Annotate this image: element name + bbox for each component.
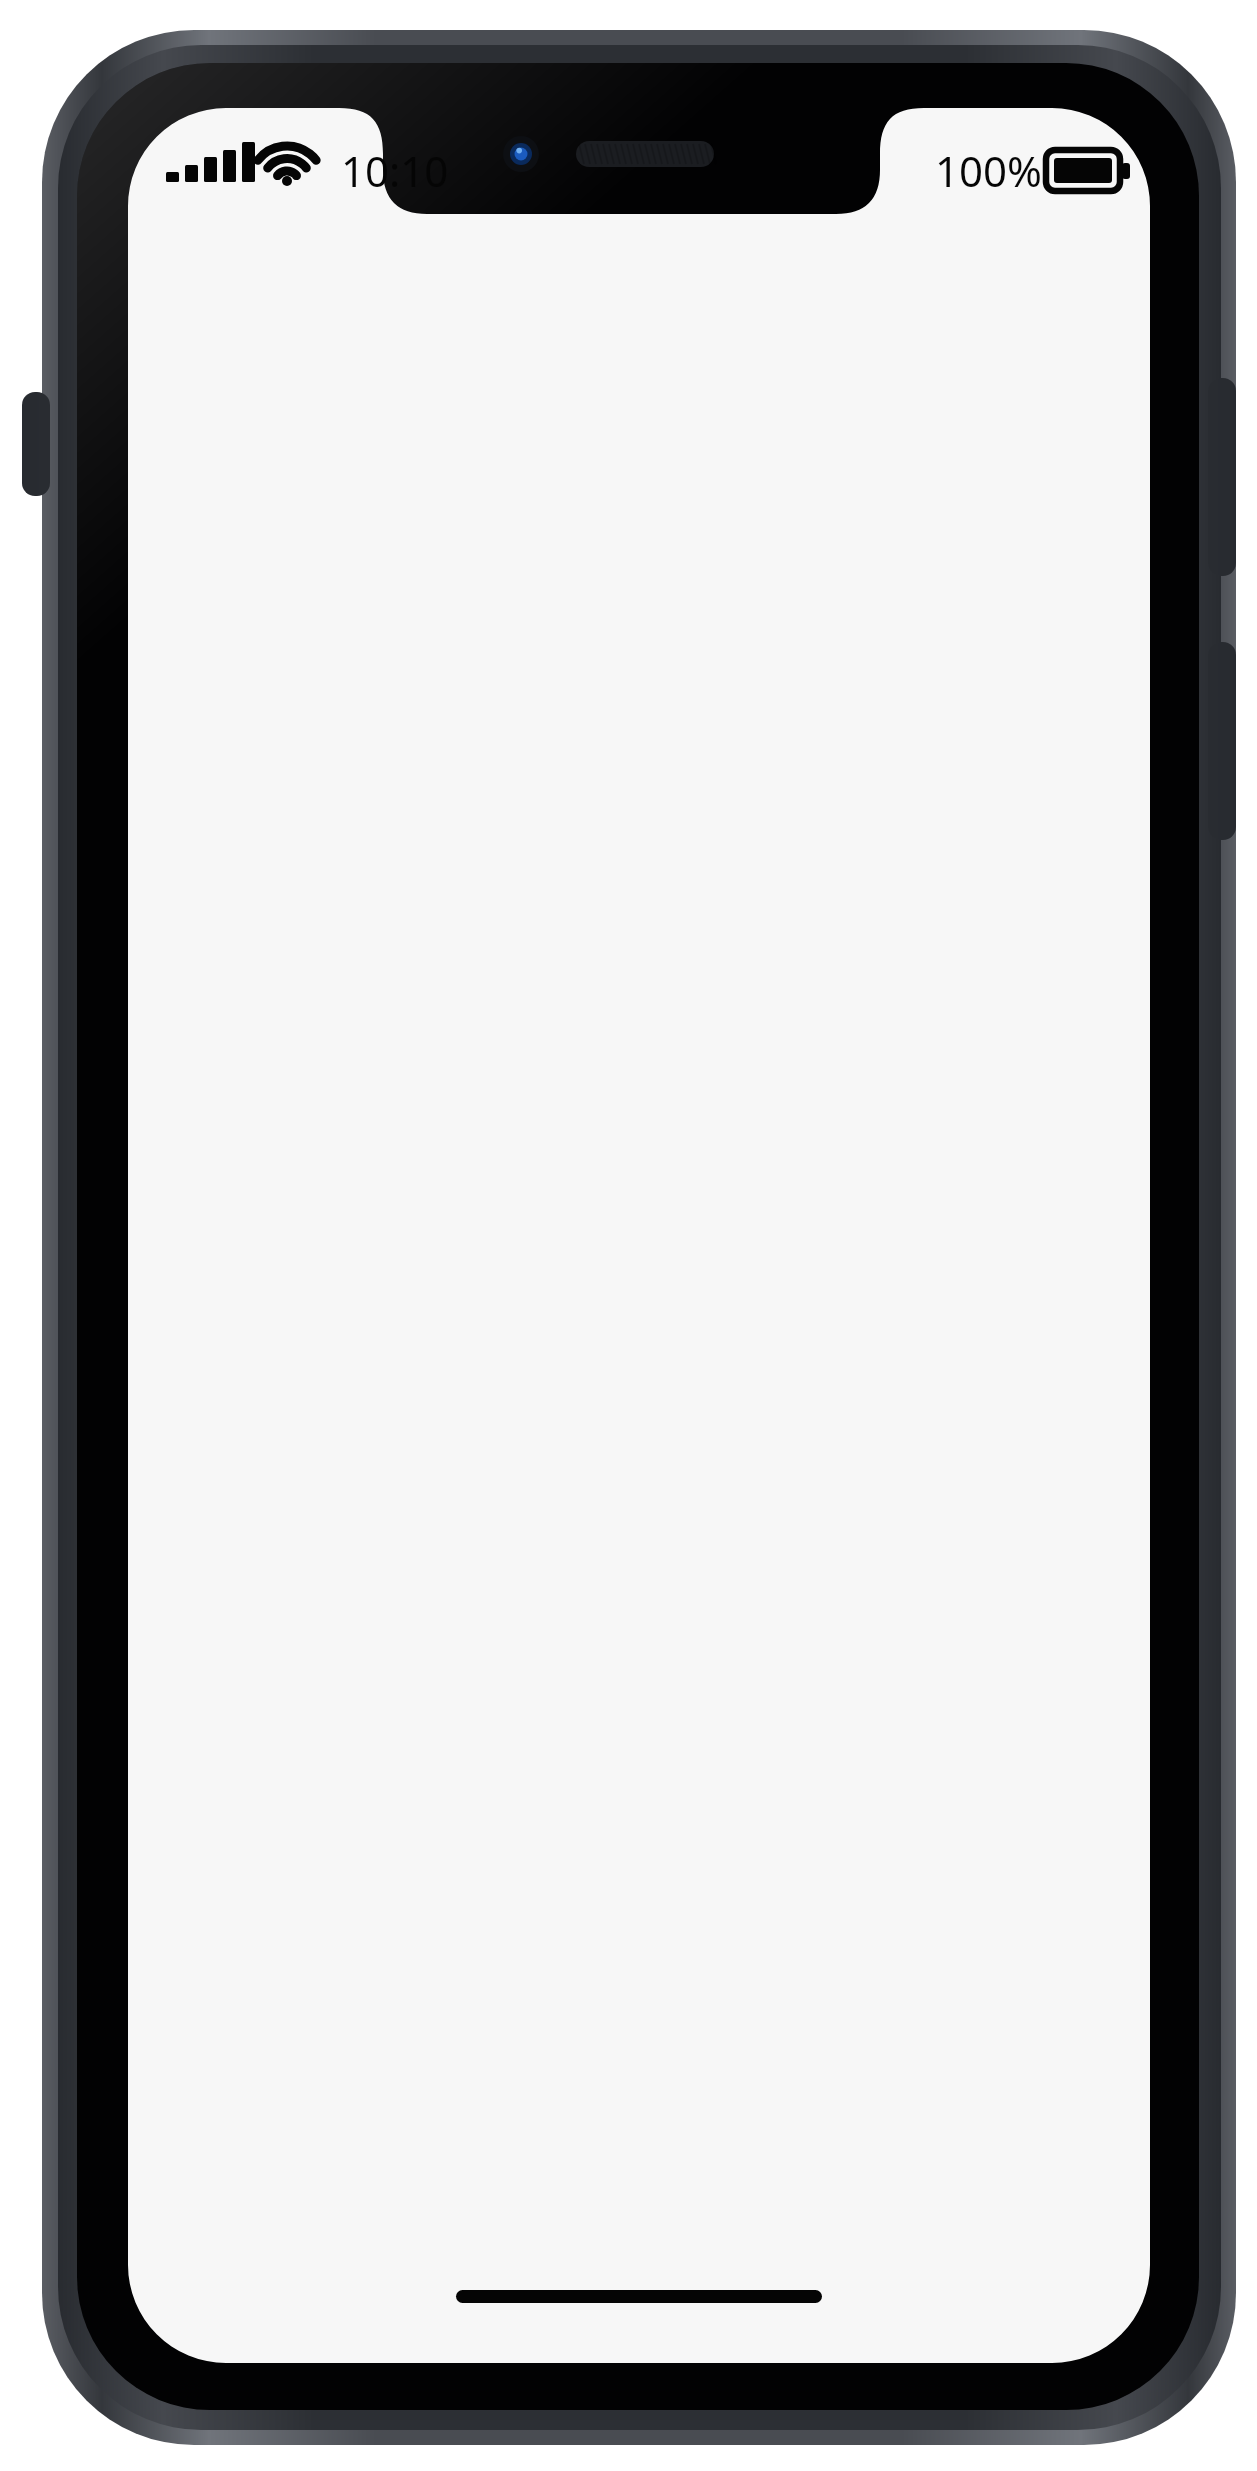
- staticText: 10:10: [341, 142, 449, 199]
- button[interactable]: Clock: [341, 142, 449, 199]
- staticText: 100%: [935, 142, 1042, 199]
- button[interactable]: Battery 100 percent: [935, 142, 1042, 199]
